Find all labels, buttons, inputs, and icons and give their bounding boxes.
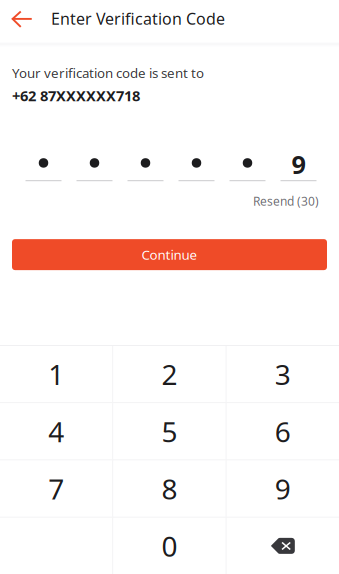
staticText: 8 bbox=[161, 470, 177, 507]
button[interactable]: 3 bbox=[227, 346, 339, 402]
button[interactable]: Back bbox=[0, 0, 44, 42]
staticText: Resend (30) bbox=[253, 193, 319, 209]
staticText: 0 bbox=[161, 527, 177, 564]
staticText: 6 bbox=[275, 413, 291, 450]
button[interactable]: Delete bbox=[227, 518, 339, 574]
staticText: Your verification code is sent to bbox=[12, 64, 204, 82]
button[interactable]: 8 bbox=[113, 460, 226, 517]
staticText: Enter Verification Code bbox=[51, 8, 225, 29]
staticText: 7 bbox=[48, 470, 64, 507]
button[interactable]: Resend (30) bbox=[253, 193, 327, 209]
staticText: 3 bbox=[275, 355, 291, 393]
staticText: 5 bbox=[161, 413, 177, 450]
button[interactable]: 5 bbox=[113, 403, 226, 459]
button[interactable]: Continue bbox=[12, 239, 327, 270]
staticText: +62 87XXXXXX718 bbox=[12, 86, 140, 105]
button[interactable]: 9 bbox=[227, 460, 339, 517]
staticText: 9 bbox=[291, 147, 305, 181]
button[interactable]: 0 bbox=[113, 518, 226, 574]
button[interactable]: 7 bbox=[0, 460, 112, 517]
button[interactable]: 1 bbox=[0, 346, 112, 402]
staticText: 2 bbox=[161, 355, 177, 393]
button[interactable]: 6 bbox=[227, 403, 339, 459]
button[interactable]: 4 bbox=[0, 403, 112, 459]
staticText: 4 bbox=[48, 413, 64, 450]
staticText: 1 bbox=[48, 355, 64, 393]
staticText: 9 bbox=[275, 470, 291, 507]
button[interactable]: 2 bbox=[113, 346, 226, 402]
staticText: Continue bbox=[141, 246, 197, 263]
